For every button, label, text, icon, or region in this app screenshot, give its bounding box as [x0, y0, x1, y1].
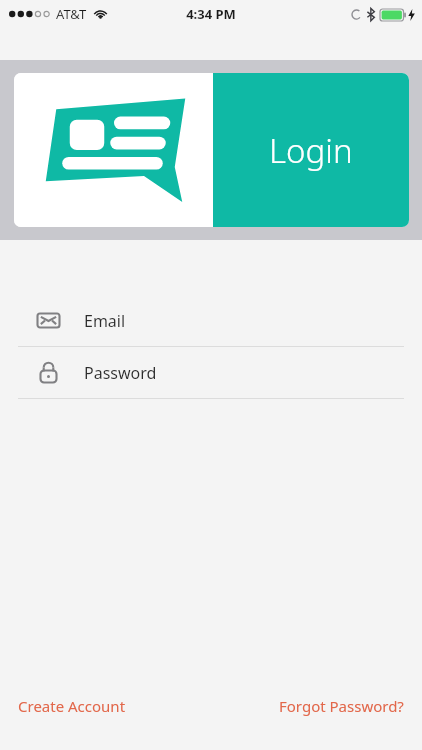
- other: Email: [36, 308, 61, 333]
- button[interactable]: Email: [0, 295, 422, 346]
- staticText: Email: [84, 310, 126, 332]
- staticText: Password: [84, 362, 157, 384]
- staticText: 4:34 PM: [186, 5, 236, 23]
- button[interactable]: Password: [0, 347, 422, 398]
- staticText: AT&T: [56, 5, 87, 23]
- staticText: Create Account: [18, 696, 126, 716]
- other: Password: [36, 360, 61, 385]
- other: App logo: [39, 97, 189, 203]
- staticText: Forgot Password?: [279, 696, 404, 716]
- button[interactable]: Create Account: [0, 692, 134, 720]
- button[interactable]: Login: [213, 73, 409, 227]
- staticText: Login: [269, 128, 353, 173]
- button[interactable]: Forgot Password?: [271, 692, 422, 720]
